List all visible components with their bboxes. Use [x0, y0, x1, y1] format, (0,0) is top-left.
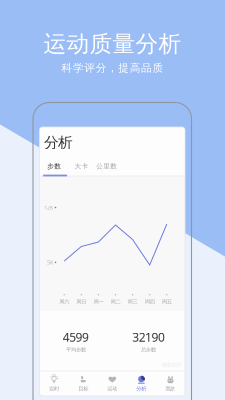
staticText: 周三: [128, 298, 138, 305]
staticText: 我的: [165, 385, 175, 392]
staticText: 目标: [78, 385, 88, 392]
staticText: 总步数: [141, 346, 156, 353]
staticText: 4599: [63, 329, 89, 345]
staticText: 分析: [44, 133, 73, 151]
staticText: 科学评分，提高品质: [62, 61, 163, 74]
staticText: 周六: [59, 298, 69, 305]
staticText: 公里数: [96, 162, 117, 170]
button[interactable]: 运动: [98, 371, 127, 396]
staticText: 12K: [44, 204, 53, 211]
staticText: 运动质量分析: [43, 30, 181, 58]
staticText: 平均步数: [66, 346, 86, 353]
button[interactable]: 目标: [69, 371, 98, 396]
staticText: 实时: [49, 385, 59, 392]
staticText: 周五: [162, 298, 172, 305]
staticText: 周一: [93, 298, 103, 305]
staticText: 周二: [110, 298, 120, 305]
button[interactable]: 分析: [127, 371, 156, 396]
button[interactable]: 实时: [39, 371, 69, 396]
staticText: 大卡: [74, 162, 88, 170]
staticText: 周日: [76, 298, 86, 305]
staticText: 周四: [145, 298, 155, 305]
staticText: 32190: [132, 329, 165, 345]
staticText: 嗨客软件: [162, 362, 182, 368]
staticText: 分析: [136, 385, 146, 392]
staticText: 运动: [107, 385, 117, 392]
button[interactable]: 我的: [156, 371, 185, 396]
staticText: 5K: [47, 259, 53, 266]
staticText: 步数: [47, 162, 61, 170]
